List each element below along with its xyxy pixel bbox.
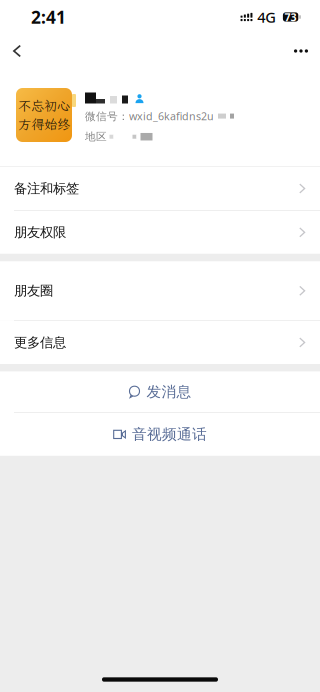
staticText: 不忘初心 xyxy=(18,97,70,114)
staticText: 4G xyxy=(257,7,276,27)
staticText: 备注和标签 xyxy=(14,180,79,197)
staticText: 方得始终 xyxy=(18,115,70,133)
staticText: 音视频通话 xyxy=(132,425,207,443)
button[interactable]: 发消息 xyxy=(0,371,320,413)
staticText: 朋友圈 xyxy=(14,283,53,299)
staticText: 发消息 xyxy=(146,383,191,401)
staticText: 2:41 xyxy=(31,5,66,28)
button[interactable]: 更多信息 xyxy=(0,321,320,364)
staticText: 朋友权限 xyxy=(14,224,66,241)
staticText: 地区 xyxy=(85,130,107,143)
button[interactable]: 朋友权限 xyxy=(0,211,320,254)
staticText: 更多信息 xyxy=(14,334,66,351)
button[interactable]: 备注和标签 xyxy=(0,167,320,211)
button[interactable]: Back xyxy=(2,34,32,68)
staticText: 73 xyxy=(285,10,297,24)
button[interactable]: 音视频通话 xyxy=(0,413,320,456)
button[interactable]: 朋友圈 xyxy=(0,261,320,321)
staticText: 微信号：wxid_6kafidns2u xyxy=(85,109,214,123)
button[interactable]: More options xyxy=(286,34,316,68)
